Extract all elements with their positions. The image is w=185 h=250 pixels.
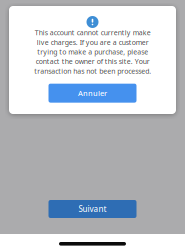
staticText: Annuler: [78, 88, 107, 98]
staticText: Suivant: [78, 204, 106, 214]
staticText: This account cannot currently make live …: [34, 28, 151, 76]
button[interactable]: Annuler: [48, 84, 136, 103]
button[interactable]: Suivant: [48, 200, 136, 218]
